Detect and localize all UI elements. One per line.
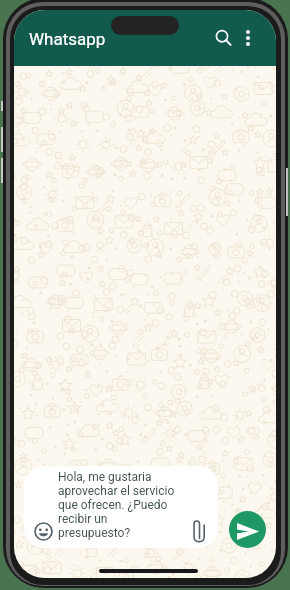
staticText: Hola, me gustaria aprovechar el servicio… <box>58 470 175 540</box>
staticText: Whatsapp <box>29 29 106 49</box>
button[interactable]: Send <box>229 511 266 548</box>
button[interactable]: Attach file <box>187 519 211 543</box>
button[interactable]: Emoji <box>24 466 218 548</box>
button[interactable]: Emoji <box>33 521 53 541</box>
button[interactable]: Search <box>210 24 238 52</box>
button[interactable]: More options <box>236 26 260 50</box>
